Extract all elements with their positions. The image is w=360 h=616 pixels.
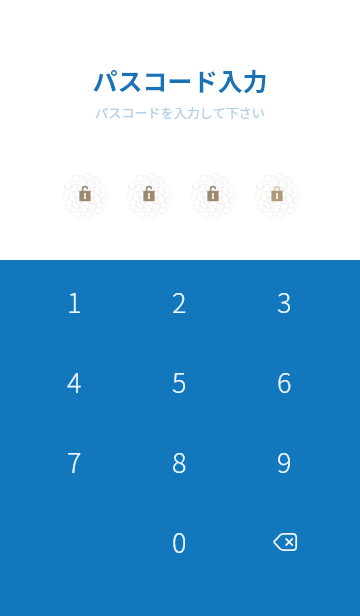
button[interactable]: Delete: [232, 501, 337, 581]
staticText: 3: [277, 282, 292, 321]
staticText: 1: [67, 282, 82, 321]
other: Delete: [271, 529, 299, 553]
staticText: パスコード入力: [92, 62, 268, 98]
button[interactable]: 3: [232, 261, 337, 341]
button[interactable]: 5: [127, 341, 232, 421]
button[interactable]: 6: [232, 341, 337, 421]
staticText: 8: [172, 442, 187, 481]
staticText: パスコードを入力して下さい: [95, 103, 265, 122]
button[interactable]: 0: [127, 501, 232, 581]
button[interactable]: 7: [22, 421, 127, 501]
staticText: 0: [172, 522, 187, 561]
button[interactable]: 1: [22, 261, 127, 341]
staticText: 7: [67, 442, 82, 481]
button[interactable]: 9: [232, 421, 337, 501]
staticText: 5: [172, 362, 187, 401]
button[interactable]: 2: [127, 261, 232, 341]
staticText: 9: [277, 442, 292, 481]
button[interactable]: 4: [22, 341, 127, 421]
staticText: 4: [67, 362, 82, 401]
staticText: 6: [277, 362, 292, 401]
staticText: 2: [172, 282, 187, 321]
button[interactable]: 8: [127, 421, 232, 501]
